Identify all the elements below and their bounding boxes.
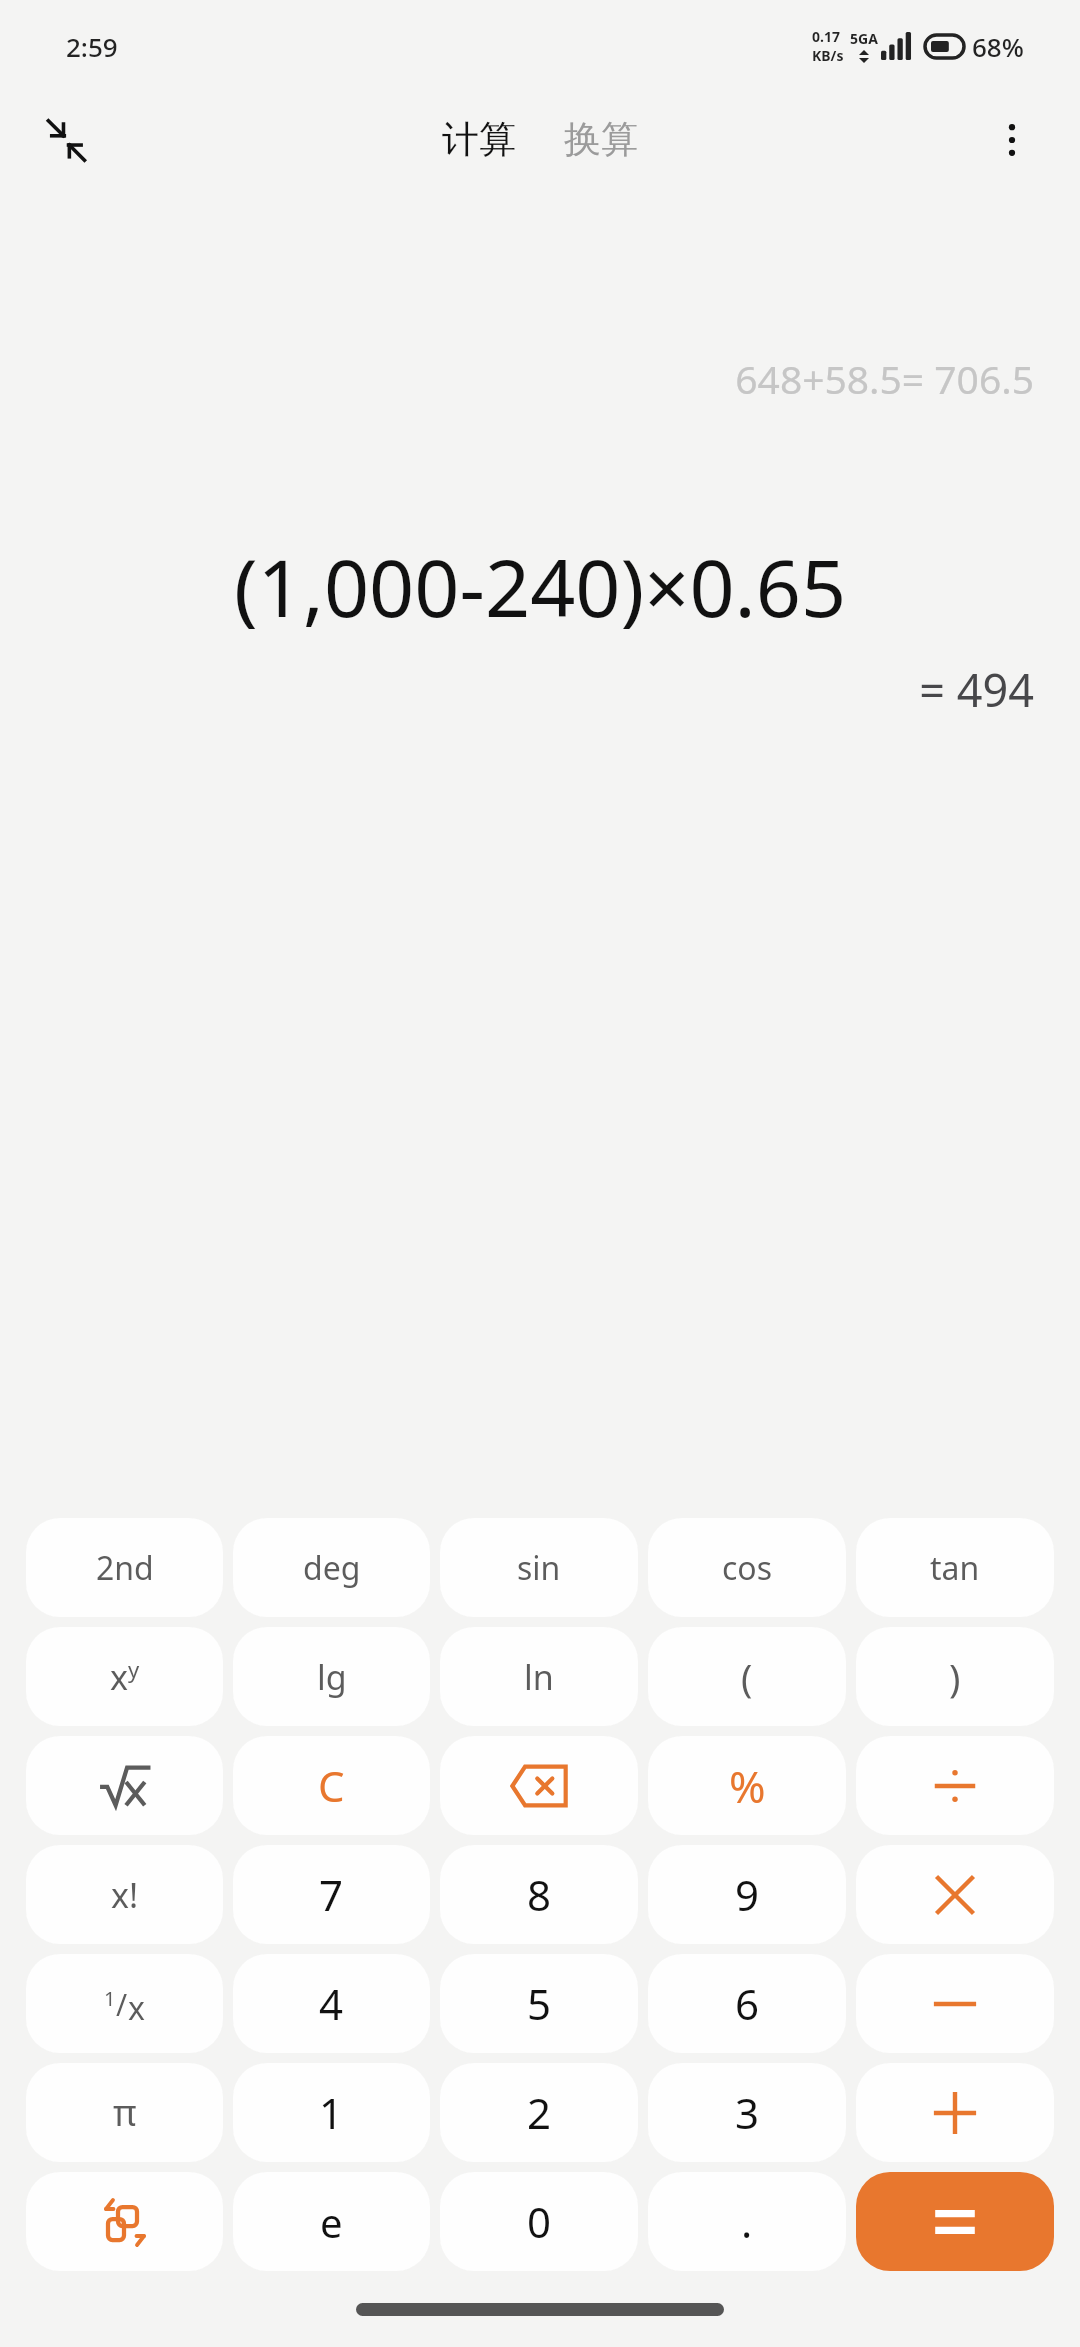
staticText: sin: [517, 1546, 561, 1590]
button[interactable]: lg: [233, 1627, 430, 1726]
staticText: e: [320, 2195, 343, 2249]
staticText: .: [741, 2193, 753, 2250]
staticText: (1,000-240)×0.65: [30, 533, 1050, 641]
staticText: lg: [317, 1654, 347, 1700]
button[interactable]: 2: [440, 2063, 638, 2162]
button[interactable]: Plus: [856, 2063, 1054, 2162]
staticText: 6: [735, 1975, 760, 2032]
button[interactable]: .: [648, 2172, 846, 2271]
button[interactable]: 6: [648, 1954, 846, 2053]
staticText: 换算: [564, 116, 638, 163]
staticText: y: [128, 1654, 140, 1684]
button[interactable]: x to the power y: [26, 1627, 223, 1726]
button[interactable]: tan: [856, 1518, 1054, 1617]
staticText: ln: [524, 1654, 554, 1700]
staticText: 8: [527, 1866, 552, 1923]
staticText: C: [318, 1757, 345, 1814]
button[interactable]: One over x: [26, 1954, 223, 2053]
button[interactable]: 5: [440, 1954, 638, 2053]
button[interactable]: cos: [648, 1518, 846, 1617]
staticText: x!: [111, 1872, 139, 1918]
button[interactable]: sin: [440, 1518, 638, 1617]
staticText: 1: [104, 1985, 116, 2012]
staticText: 648+58.5= 706.5: [0, 352, 1034, 405]
button[interactable]: C: [233, 1736, 430, 1835]
staticText: ): [949, 1651, 961, 1703]
button[interactable]: Equals: [856, 2172, 1054, 2271]
button[interactable]: π: [26, 2063, 223, 2162]
staticText: 0: [527, 2193, 552, 2250]
staticText: (: [741, 1651, 753, 1703]
staticText: cos: [722, 1546, 773, 1590]
staticText: π: [113, 2088, 137, 2137]
staticText: 3: [735, 2084, 760, 2141]
button[interactable]: x!: [26, 1845, 223, 1944]
button[interactable]: 2nd: [26, 1518, 223, 1617]
staticText: 4: [319, 1975, 344, 2032]
staticText: 68%: [972, 29, 1024, 64]
button[interactable]: 1: [233, 2063, 430, 2162]
button[interactable]: ): [856, 1627, 1054, 1726]
staticText: = 494: [0, 659, 1034, 720]
button[interactable]: Multiply: [856, 1845, 1054, 1944]
button[interactable]: Minus: [856, 1954, 1054, 2053]
staticText: 7: [319, 1866, 344, 1923]
staticText: 5GA: [850, 29, 878, 48]
button[interactable]: 计算: [428, 106, 530, 173]
button[interactable]: Square root: [26, 1736, 223, 1835]
button[interactable]: 8: [440, 1845, 638, 1944]
button[interactable]: 9: [648, 1845, 846, 1944]
button[interactable]: 换算: [550, 106, 652, 173]
staticText: 计算: [442, 116, 516, 163]
staticText: 0.17: [812, 27, 840, 46]
button[interactable]: deg: [233, 1518, 430, 1617]
button[interactable]: Backspace: [440, 1736, 638, 1835]
staticText: tan: [930, 1546, 980, 1590]
staticText: %: [729, 1756, 766, 1816]
button[interactable]: %: [648, 1736, 846, 1835]
staticText: x: [110, 1654, 128, 1700]
staticText: x: [128, 1986, 145, 2030]
button[interactable]: 0: [440, 2172, 638, 2271]
button[interactable]: More options: [974, 102, 1050, 178]
staticText: /: [116, 1984, 128, 2025]
button[interactable]: Collapse: [28, 102, 104, 178]
button[interactable]: (: [648, 1627, 846, 1726]
button[interactable]: 3: [648, 2063, 846, 2162]
button[interactable]: ln: [440, 1627, 638, 1726]
staticText: 2nd: [96, 1546, 154, 1590]
staticText: KB/s: [812, 46, 844, 65]
staticText: 2:59: [66, 29, 118, 64]
button[interactable]: Unit convert: [26, 2172, 223, 2271]
staticText: deg: [303, 1546, 361, 1590]
staticText: 2: [527, 2084, 552, 2141]
button[interactable]: e: [233, 2172, 430, 2271]
staticText: 9: [735, 1866, 760, 1923]
button[interactable]: Divide: [856, 1736, 1054, 1835]
staticText: 5: [527, 1975, 552, 2032]
staticText: 1: [319, 2084, 344, 2141]
button[interactable]: 4: [233, 1954, 430, 2053]
button[interactable]: 7: [233, 1845, 430, 1944]
